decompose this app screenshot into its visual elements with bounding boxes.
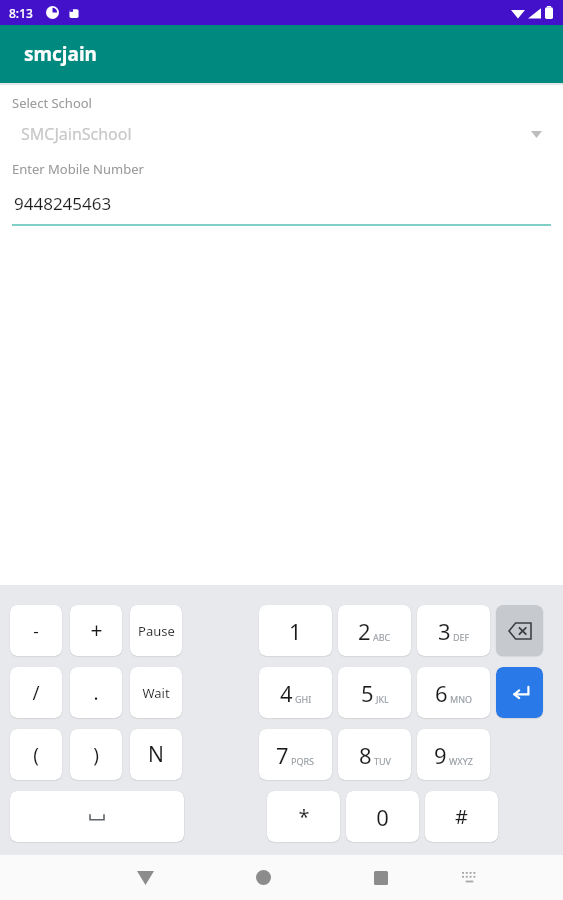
staticText: ) [93,742,99,768]
button[interactable]: - [10,605,62,656]
staticText: SMCJainSchool [21,123,531,145]
staticText: MNO [450,693,473,705]
staticText: Enter Mobile Number [12,160,144,178]
staticText: 7 [276,740,289,770]
staticText: Select School [12,94,92,112]
staticText: ( [33,742,39,768]
staticText: ABC [373,631,391,643]
staticText: / [32,680,40,706]
button[interactable]: 9448245463 [12,192,551,215]
staticText: 9 [434,740,447,770]
button[interactable]: Recent apps [354,855,408,900]
staticText: N [148,740,164,769]
button[interactable]: 0 [346,791,419,842]
button[interactable]: 9 [417,729,490,780]
button[interactable]: / [10,667,62,718]
button[interactable]: 5 [338,667,411,718]
staticText: DEF [453,631,470,643]
staticText: WXYZ [449,755,473,767]
other: Enter [510,685,530,701]
staticText: 4 [280,678,293,708]
button[interactable]: + [70,605,122,656]
button[interactable]: 2 [338,605,411,656]
button[interactable]: Switch keyboard [446,855,492,900]
button[interactable]: Back [118,855,172,900]
button[interactable]: Enter [496,667,543,718]
staticText: 9448245463 [14,192,112,215]
button[interactable]: N [130,729,182,780]
button[interactable]: Space [10,791,184,842]
button[interactable]: . [70,667,122,718]
button[interactable]: Home [236,855,290,900]
staticText: smcjain [24,41,97,67]
staticText: PQRS [291,755,315,767]
button[interactable]: * [267,791,340,842]
button[interactable]: 8 [338,729,411,780]
staticText: 2 [358,616,371,646]
staticText: 6 [435,678,448,708]
other: Space [90,813,104,821]
other: Open school dropdown [531,131,542,138]
button[interactable]: Wait [130,667,182,718]
staticText: + [90,616,103,645]
staticText: 8 [359,740,372,770]
staticText: TUV [374,755,391,767]
button[interactable]: 4 [259,667,332,718]
staticText: 3 [438,616,451,646]
button[interactable]: ( [10,729,62,780]
button[interactable]: 6 [417,667,490,718]
button[interactable]: Pause [130,605,182,656]
staticText: 0 [376,802,389,832]
button[interactable]: # [425,791,498,842]
button[interactable]: SMCJainSchool [12,122,551,146]
staticText: # [455,803,468,830]
staticText: GHI [295,693,312,705]
button[interactable]: 7 [259,729,332,780]
staticText: 1 [289,616,302,646]
button[interactable]: 1 [259,605,332,656]
staticText: - [33,619,39,642]
staticText: 5 [361,678,374,708]
staticText: . [93,680,99,706]
button[interactable]: 3 [417,605,490,656]
staticText: JKL [376,693,389,705]
staticText: Pause [138,622,175,640]
button[interactable]: Backspace [496,605,543,656]
button[interactable]: ) [70,729,122,780]
staticText: * [298,803,310,830]
staticText: Wait [142,684,170,702]
staticText: 8:13 [9,5,33,21]
other: Backspace [509,623,531,639]
